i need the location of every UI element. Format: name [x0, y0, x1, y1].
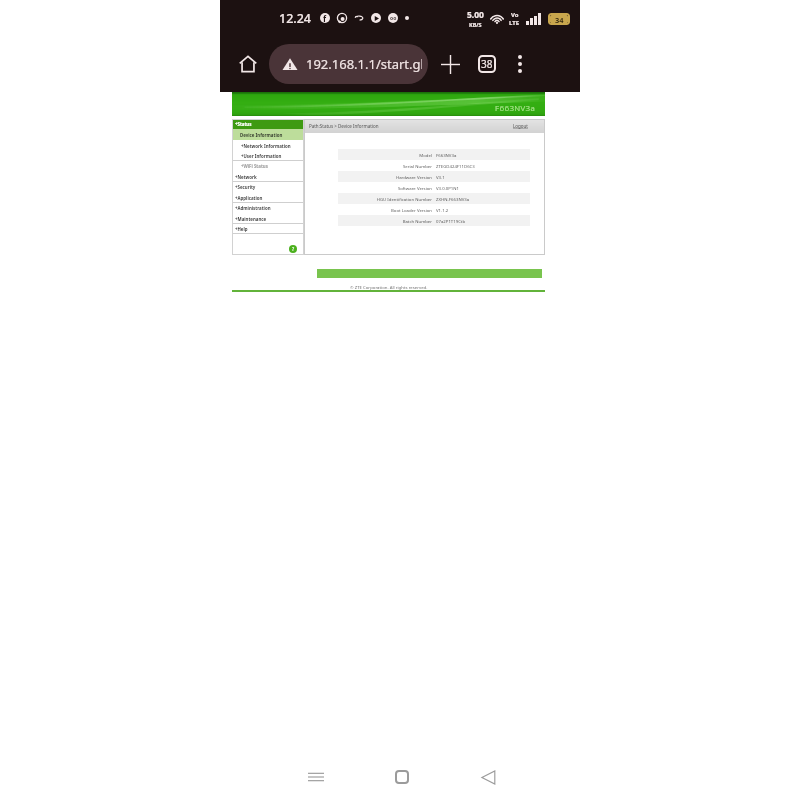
button[interactable]: Recent apps — [293, 754, 339, 800]
staticText: oo — [390, 15, 397, 22]
staticText: +Network — [235, 174, 257, 180]
button[interactable]: +Administration — [232, 203, 304, 213]
staticText: Vo — [511, 11, 519, 19]
button[interactable]: 192.168.1.1/start.gh — [269, 44, 428, 84]
staticText: 5.00 — [467, 9, 484, 21]
button[interactable]: +Application — [232, 192, 304, 203]
button[interactable]: +WiFi Status — [232, 161, 304, 171]
staticText: 38 — [481, 57, 493, 71]
button[interactable]: +Security — [232, 182, 304, 192]
staticText: Path:Status > Device Information — [309, 123, 379, 129]
staticText: +Help — [235, 226, 248, 232]
staticText: F663NV3a — [495, 102, 536, 113]
button[interactable]: +Maintenance — [232, 213, 304, 224]
staticText: 12.24 — [279, 10, 312, 27]
staticText: +Security — [235, 184, 256, 190]
staticText: LTE — [509, 19, 520, 27]
button[interactable]: +Network — [232, 171, 304, 182]
staticText: Serial Number — [402, 163, 432, 169]
staticText: V3.0.0P1N1 — [436, 185, 460, 191]
staticText: 07a2P1T19Ctb — [436, 218, 466, 224]
button[interactable]: Tabs — [473, 50, 501, 78]
button[interactable]: New tab — [436, 50, 464, 78]
staticText: ZXHN-F663NV3a — [436, 196, 470, 202]
staticText: Model — [419, 152, 432, 158]
staticText: Logout — [513, 123, 528, 129]
staticText: f — [323, 13, 327, 23]
button[interactable]: +Help — [232, 224, 304, 234]
staticText: F663NV3a — [436, 152, 457, 158]
staticText: Hardware Version — [395, 174, 432, 180]
staticText: V3.1 — [436, 174, 445, 180]
staticText: 192.168.1.1/start.gh — [306, 55, 422, 73]
staticText: +Administration — [235, 205, 271, 211]
staticText: Batch Number — [402, 218, 432, 224]
staticText: V1.1.2 — [436, 207, 449, 213]
staticText: ZTEGD424F11D6C3 — [436, 163, 475, 169]
staticText: Device Information — [240, 132, 283, 138]
staticText: 34 — [555, 15, 564, 23]
staticText: ? — [292, 246, 295, 253]
staticText: +Status — [235, 121, 252, 127]
staticText: +Application — [235, 195, 263, 201]
staticText: +WiFi Status — [241, 163, 268, 169]
staticText: KB/S — [469, 21, 482, 28]
staticText: © ZTE Corporation. All rights reserved. — [350, 284, 428, 290]
staticText: +Maintenance — [235, 216, 267, 222]
staticText: Boot Loader Version — [391, 207, 432, 213]
button[interactable]: +Status — [232, 119, 304, 129]
staticText: Software Version — [397, 185, 432, 191]
button[interactable]: Home — [233, 49, 263, 79]
staticText: +User Information — [241, 153, 282, 159]
button[interactable]: Logout — [510, 121, 531, 131]
button[interactable]: More options — [507, 51, 533, 77]
button[interactable]: +Network Information — [232, 140, 304, 151]
staticText: HGU Identification Number — [376, 196, 432, 202]
button[interactable]: Back — [465, 754, 511, 800]
button[interactable]: Home — [379, 754, 425, 800]
button[interactable]: +User Information — [232, 151, 304, 161]
button[interactable]: Help — [289, 245, 297, 253]
button[interactable]: Device Information — [232, 129, 304, 140]
staticText: +Network Information — [241, 143, 291, 149]
